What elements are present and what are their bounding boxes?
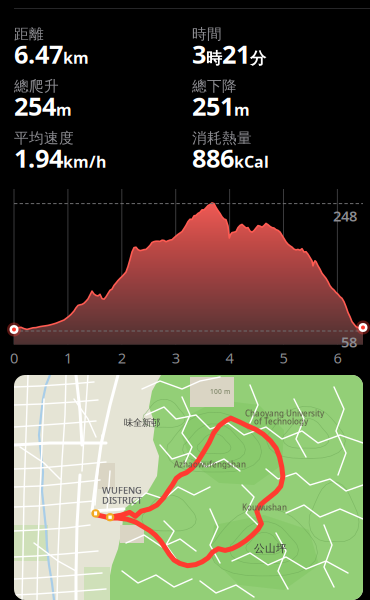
staticText: Azhaowufengshan — [174, 459, 246, 470]
staticText: 分 — [250, 48, 266, 68]
staticText: 100 m — [210, 387, 230, 396]
staticText: 4 — [226, 348, 234, 367]
staticText: km/h — [63, 151, 106, 172]
staticText: 886 — [192, 141, 234, 175]
staticText: Chaoyang University — [245, 408, 324, 419]
staticText: 254 — [14, 89, 56, 123]
staticText: 6.47 — [14, 37, 63, 71]
staticText: 1 — [64, 348, 72, 367]
staticText: m — [234, 99, 250, 120]
staticText: 251 — [192, 89, 234, 123]
staticText: 1.94 — [14, 141, 63, 175]
staticText: 3 — [172, 348, 180, 367]
staticText: 6 — [333, 348, 341, 367]
staticText: DISTRICT — [102, 494, 142, 506]
staticText: 21 — [222, 37, 250, 71]
staticText: m — [56, 99, 72, 120]
staticText: 時間 — [192, 25, 222, 43]
staticText: kCal — [234, 151, 269, 172]
staticText: 248 — [333, 206, 357, 225]
staticText: 58 — [341, 332, 357, 351]
staticText: 消耗熱量 — [192, 129, 252, 147]
staticText: Kouwushan — [242, 502, 287, 513]
staticText: 公山坪 — [254, 542, 287, 555]
staticText: 平均速度 — [14, 129, 74, 147]
staticText: 2 — [118, 348, 126, 367]
staticText: 距離 — [14, 25, 44, 43]
staticText: km — [63, 47, 89, 68]
staticText: 0 — [10, 348, 18, 367]
staticText: 總爬升 — [14, 77, 59, 95]
staticText: 總下降 — [192, 77, 237, 95]
staticText: of Technology — [254, 416, 308, 427]
staticText: 5 — [279, 348, 287, 367]
staticText: 時 — [206, 48, 222, 68]
staticText: 味全新邨 — [124, 417, 160, 428]
staticText: 3 — [192, 37, 206, 71]
staticText: WUFENG — [102, 484, 142, 496]
